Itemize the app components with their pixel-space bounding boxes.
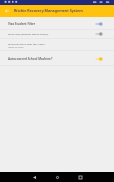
staticText: Visa Student Filter [8,22,36,26]
button[interactable]: Home [46,172,69,182]
staticText: Must join RMA's with the 7 days [8,42,45,45]
button[interactable]: Must class (whether within school) [0,30,114,38]
button[interactable]: Toggle [92,20,110,28]
button[interactable]: Autocovered School Machine? [0,51,114,65]
button[interactable]: Toggle [92,55,110,63]
button[interactable]: Recents [69,172,92,182]
button[interactable]: Must join RMA's with the 7 days [0,39,114,50]
button[interactable]: Back [23,172,46,182]
staticText: Must class (whether within school) [8,32,49,35]
button[interactable]: Navigate up [0,5,14,17]
staticText: Ritchie Recovery Management System [14,8,83,13]
staticText: Autocovered School Machine? [8,57,53,61]
staticText: Within 24 hours [8,46,24,49]
button[interactable]: Visa Student Filter [0,17,114,29]
button[interactable]: Toggle [92,30,110,38]
